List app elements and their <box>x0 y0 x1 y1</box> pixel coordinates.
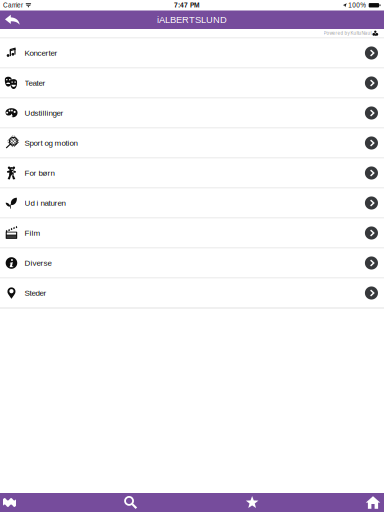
button[interactable]: For børn <box>0 158 384 188</box>
button[interactable]: Teater <box>0 68 384 98</box>
staticText: iALBERTSLUND <box>157 14 227 25</box>
button[interactable]: Film <box>0 218 384 248</box>
staticText: Film <box>24 228 40 237</box>
button[interactable]: Sport og motion <box>0 128 384 158</box>
button[interactable]: Koncerter <box>0 38 384 68</box>
button[interactable]: Ud i naturen <box>0 188 384 218</box>
button[interactable]: Map <box>0 493 19 512</box>
staticText: Steder <box>24 288 46 297</box>
staticText: Teater <box>24 78 45 87</box>
staticText: Koncerter <box>24 48 57 57</box>
button[interactable]: Steder <box>0 278 384 308</box>
staticText: Powered by KultuNaut <box>323 31 371 36</box>
staticText: 100% <box>348 2 366 9</box>
staticText: For børn <box>24 168 54 177</box>
staticText: Sport og motion <box>24 138 77 147</box>
staticText: Carrier <box>3 2 23 9</box>
button[interactable]: Back <box>0 11 30 28</box>
button[interactable]: Search <box>121 493 140 512</box>
staticText: 7:47 PM <box>174 1 200 9</box>
staticText: Ud i naturen <box>24 198 65 207</box>
button[interactable]: Udstillinger <box>0 98 384 128</box>
button[interactable]: Diverse <box>0 248 384 278</box>
staticText: Udstillinger <box>24 108 63 117</box>
button[interactable]: Home <box>363 493 382 512</box>
button[interactable]: Favorites <box>242 493 261 512</box>
staticText: Diverse <box>24 258 51 267</box>
